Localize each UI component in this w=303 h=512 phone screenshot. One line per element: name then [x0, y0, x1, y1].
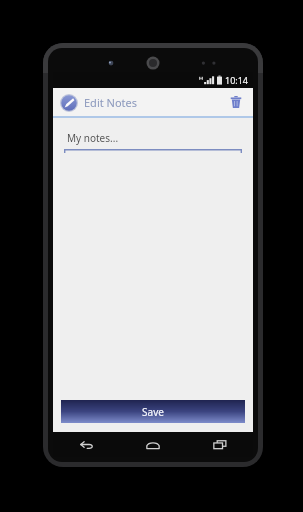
staticText: 10:14: [225, 74, 249, 86]
button[interactable]: [59, 93, 78, 112]
staticText: My notes...: [67, 131, 119, 145]
button[interactable]: Home: [119, 432, 186, 457]
button[interactable]: Back: [53, 432, 119, 457]
button[interactable]: Delete note: [225, 91, 247, 113]
button[interactable]: My notes...: [64, 130, 242, 153]
button[interactable]: Recent apps: [186, 432, 253, 457]
button[interactable]: Save: [61, 400, 245, 423]
staticText: Save: [142, 405, 164, 419]
staticText: Edit Notes: [84, 95, 138, 110]
